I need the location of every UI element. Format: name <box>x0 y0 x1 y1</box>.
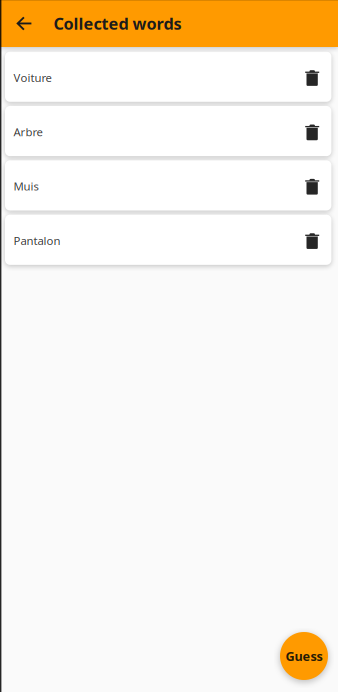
button[interactable]: Back <box>0 0 47 47</box>
staticText: Arbre <box>13 124 42 139</box>
button[interactable]: Delete Pantalon <box>295 215 329 265</box>
button[interactable]: Arbre <box>5 106 331 156</box>
button[interactable]: Voiture <box>5 52 331 102</box>
button[interactable]: Delete Muis <box>295 160 329 210</box>
staticText: Muis <box>13 178 38 194</box>
staticText: Voiture <box>13 70 51 85</box>
button[interactable]: Muis <box>5 160 331 210</box>
button[interactable]: Guess <box>280 632 328 680</box>
staticText: Guess <box>285 647 322 665</box>
staticText: Pantalon <box>13 233 60 248</box>
button[interactable]: Delete Voiture <box>295 52 329 102</box>
button[interactable]: Pantalon <box>5 215 331 265</box>
button[interactable]: Delete Arbre <box>295 106 329 156</box>
staticText: Collected words <box>53 12 181 35</box>
